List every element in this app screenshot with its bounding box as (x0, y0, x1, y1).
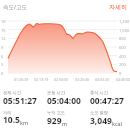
staticText: 0 (1, 71, 4, 76)
staticText: 소모 열량 (90, 110, 108, 116)
staticText: 9 (1, 45, 4, 50)
staticText: 800 (119, 36, 126, 41)
staticText: 운동 시간 (47, 90, 65, 96)
staticText: km (20, 119, 29, 126)
staticText: 휴식 시간 (90, 90, 108, 96)
staticText: 10.5 (3, 114, 20, 126)
staticText: 1,200 (119, 19, 130, 24)
staticText: 400 (119, 54, 126, 59)
staticText: 600 (119, 45, 126, 50)
staticText: 18 (1, 19, 6, 24)
staticText: 04:03:20 (95, 77, 110, 82)
button[interactable]: 소모 열량 (90, 108, 130, 126)
staticText: 01:36:39 (14, 77, 29, 82)
staticText: 04:40:00 (116, 77, 130, 82)
button[interactable]: 전체 시간 (3, 88, 44, 106)
button[interactable]: 누적 고도 (47, 108, 87, 126)
staticText: 02:13:19 (34, 77, 49, 82)
staticText: 12 (1, 36, 6, 41)
staticText: 929 (47, 115, 62, 127)
staticText: 누적 고도 (47, 110, 65, 116)
staticText: 3,049 (90, 115, 112, 127)
staticText: m (62, 120, 68, 127)
button[interactable]: 자세히 (109, 3, 127, 11)
staticText: 15 (1, 28, 6, 33)
staticText: 6 (1, 54, 4, 59)
staticText: kcal (112, 120, 123, 127)
staticText: 05:04:00 (47, 95, 81, 107)
button[interactable]: 운동 시간 (47, 88, 87, 106)
staticText: 속도/고도 (3, 3, 28, 11)
button[interactable]: 휴식 시간 (90, 88, 130, 106)
staticText: 02:50:00 (54, 77, 69, 82)
staticText: 전체 시간 (3, 90, 21, 96)
staticText: 거리 (3, 110, 12, 115)
staticText: 자세히 (109, 3, 127, 11)
staticText: 200 (119, 62, 126, 67)
staticText: 05:51:27 (3, 95, 37, 107)
staticText: 03:26:40 (75, 77, 90, 82)
staticText: 1,000 (119, 28, 130, 33)
staticText: 0 (119, 71, 122, 76)
staticText: 00:47:27 (90, 95, 124, 107)
button[interactable]: 거리 (3, 108, 44, 125)
staticText: 3 (1, 62, 4, 67)
